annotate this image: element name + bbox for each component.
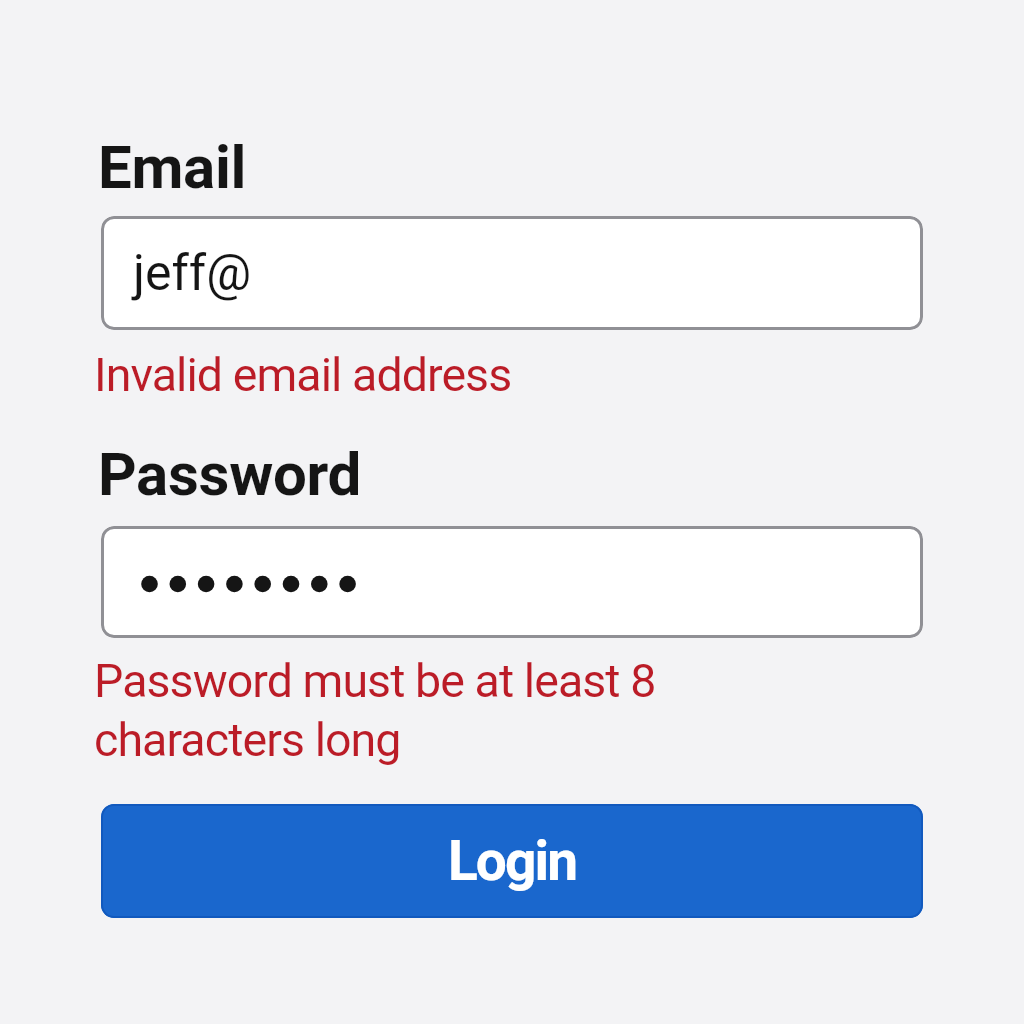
staticText: Email xyxy=(98,132,247,202)
staticText: Login xyxy=(448,829,577,893)
staticText: jeff@ xyxy=(133,244,252,303)
staticText: Password xyxy=(98,439,362,509)
staticText: Password must be at least 8 characters l… xyxy=(94,654,916,767)
button[interactable]: jeff@ xyxy=(101,216,923,330)
button[interactable] xyxy=(101,526,923,638)
staticText: Invalid email address xyxy=(94,348,512,402)
button[interactable]: Login xyxy=(101,804,923,918)
